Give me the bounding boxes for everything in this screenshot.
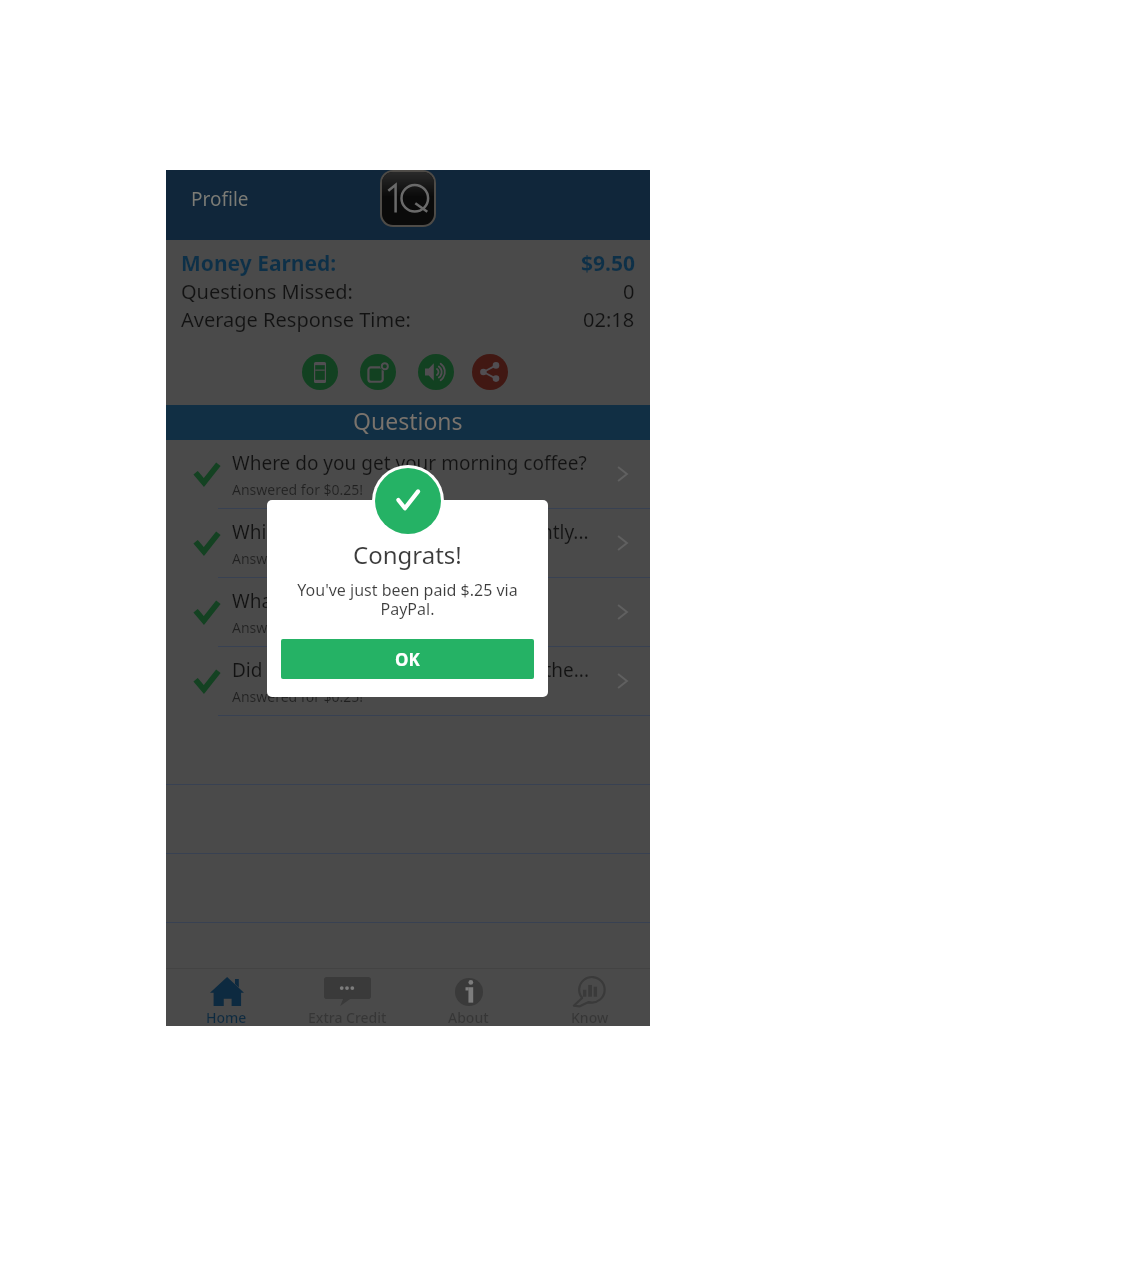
button[interactable]: Know	[529, 969, 650, 1026]
staticText: Answered for $0.25!	[232, 549, 364, 568]
staticText: Average Response Time:	[181, 306, 411, 333]
button[interactable]: What is your favorite drink at the...	[166, 578, 650, 647]
staticText: OK	[395, 648, 420, 671]
button[interactable]: Phone	[302, 354, 338, 390]
button[interactable]: Notifications	[360, 354, 396, 390]
staticText: About	[448, 1008, 489, 1026]
button[interactable]: Share	[472, 354, 508, 390]
button[interactable]: Which of these have you used recently...	[166, 509, 650, 578]
button[interactable]: Where do you get your morning coffee?	[166, 440, 650, 509]
button[interactable]: Home	[166, 969, 287, 1026]
staticText: Know	[571, 1008, 609, 1026]
staticText: Congrats!	[353, 538, 462, 571]
staticText: $9.50	[581, 249, 635, 277]
staticText: Home	[206, 1008, 247, 1026]
button[interactable]: Profile	[191, 186, 249, 212]
staticText: Questions Missed:	[181, 278, 353, 305]
button[interactable]: 1Q home	[382, 172, 434, 225]
staticText: Questions	[353, 405, 463, 436]
staticText: Answered for $0.25!	[232, 618, 364, 637]
button[interactable]: Sound	[418, 354, 454, 390]
staticText: 0	[623, 278, 635, 305]
staticText: 02:18	[583, 306, 635, 333]
staticText: You've just been paid $.25 via PayPal.	[281, 579, 534, 620]
staticText: Answered for $0.25!	[232, 687, 364, 706]
staticText: Answered for $0.25!	[232, 480, 364, 499]
button[interactable]: Questions	[166, 405, 650, 440]
staticText: Where do you get your morning coffee?	[232, 450, 587, 476]
staticText: Did you notice the new product on the...	[232, 657, 590, 683]
staticText: Which of these have you used recently...	[232, 519, 589, 545]
button[interactable]: Did you notice the new product on the...	[166, 647, 650, 716]
staticText: Money Earned:	[181, 249, 337, 277]
button[interactable]: Extra Credit	[287, 969, 408, 1026]
staticText: Extra Credit	[308, 1008, 387, 1026]
button[interactable]: About	[408, 969, 529, 1026]
staticText: What is your favorite drink at the...	[232, 588, 541, 614]
button[interactable]: OK	[281, 639, 534, 679]
